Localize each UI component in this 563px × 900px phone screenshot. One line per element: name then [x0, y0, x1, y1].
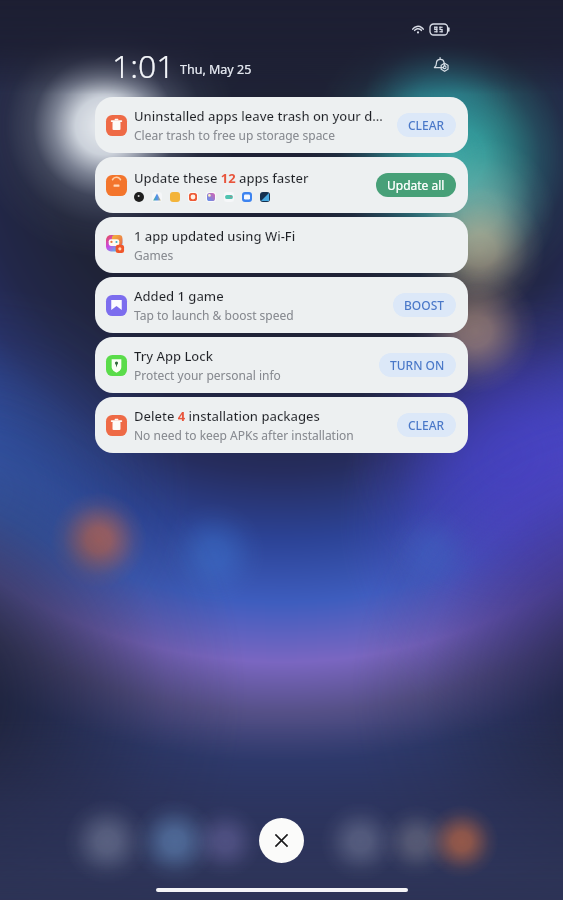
button[interactable]: Update all	[376, 173, 456, 197]
staticText: Protect your personal info	[134, 367, 281, 383]
button[interactable]: CLEAR	[397, 113, 456, 137]
staticText: TURN ON	[390, 357, 445, 373]
staticText: Delete 4 installation packages	[134, 407, 320, 425]
staticText: CLEAR	[408, 417, 445, 433]
button[interactable]: Notification settings	[431, 54, 451, 74]
staticText: Uninstalled apps leave trash on your d…	[134, 107, 383, 125]
staticText: 1:01	[112, 44, 175, 80]
staticText: Update all	[387, 177, 445, 193]
staticText: Update these 12 apps faster	[134, 169, 309, 187]
button[interactable]: Update these 12 apps faster	[95, 157, 468, 213]
button[interactable]: Clear all notifications	[259, 818, 304, 863]
button[interactable]: BOOST	[393, 293, 456, 317]
staticText: CLEAR	[408, 117, 445, 133]
staticText: Games	[134, 247, 174, 263]
button[interactable]: Uninstalled apps leave trash on your d…	[95, 97, 468, 153]
staticText: Clear trash to free up storage space	[134, 127, 335, 143]
staticText: Added 1 game	[134, 287, 224, 305]
staticText: Thu, May 25	[180, 61, 252, 78]
button[interactable]: 1 app updated using Wi-Fi	[95, 217, 468, 273]
staticText: 1 app updated using Wi-Fi	[134, 227, 296, 245]
button[interactable]: Try App Lock	[95, 337, 468, 393]
staticText: No need to keep APKs after installation	[134, 427, 354, 443]
button[interactable]: CLEAR	[397, 413, 456, 437]
staticText: Try App Lock	[134, 347, 213, 365]
staticText: Tap to launch & boost speed	[134, 307, 294, 323]
button[interactable]: TURN ON	[379, 353, 456, 377]
button[interactable]: Delete 4 installation packages	[95, 397, 468, 453]
staticText: BOOST	[404, 297, 445, 313]
button[interactable]: Added 1 game	[95, 277, 468, 333]
